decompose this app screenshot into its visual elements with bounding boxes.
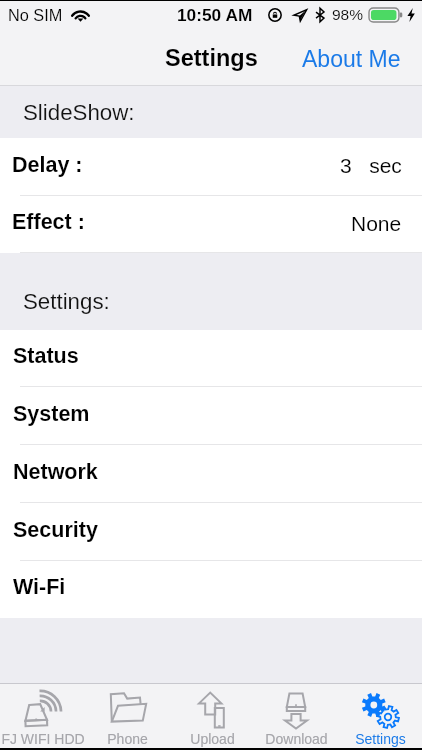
staticText: Effect :: [12, 210, 85, 234]
staticText: 10:50 AM: [177, 5, 253, 24]
button[interactable]: About Me: [281, 37, 422, 81]
button[interactable]: Upload: [170, 684, 254, 748]
staticText: Wi-Fi: [13, 575, 66, 599]
staticText: FJ WIFI HDD: [1, 731, 85, 747]
button[interactable]: Delay :: [0, 138, 422, 195]
staticText: Delay :: [12, 153, 83, 177]
staticText: Settings:: [23, 289, 110, 314]
staticText: Status: [13, 344, 79, 368]
staticText: SlideShow:: [23, 100, 135, 125]
staticText: 3 sec: [340, 154, 402, 177]
button[interactable]: Download: [254, 684, 338, 748]
staticText: About Me: [302, 46, 401, 72]
button[interactable]: Wi-Fi: [0, 561, 422, 617]
staticText: 98%: [332, 6, 364, 23]
staticText: No SIM: [8, 6, 63, 24]
staticText: Download: [265, 731, 328, 747]
staticText: None: [351, 212, 402, 235]
button[interactable]: Security: [0, 503, 422, 560]
button[interactable]: Phone: [85, 684, 170, 748]
staticText: Security: [13, 518, 98, 542]
button[interactable]: Status: [0, 330, 422, 386]
button[interactable]: Settings: [338, 684, 422, 748]
button[interactable]: Network: [0, 445, 422, 502]
button[interactable]: FJ WIFI HDD: [0, 684, 85, 748]
staticText: Phone: [107, 731, 148, 747]
button[interactable]: System: [0, 387, 422, 444]
staticText: Settings: [355, 731, 406, 747]
staticText: Settings: [165, 45, 258, 71]
staticText: Upload: [190, 731, 235, 747]
staticText: System: [13, 402, 90, 426]
button[interactable]: Effect :: [0, 196, 422, 252]
staticText: Network: [13, 460, 98, 484]
